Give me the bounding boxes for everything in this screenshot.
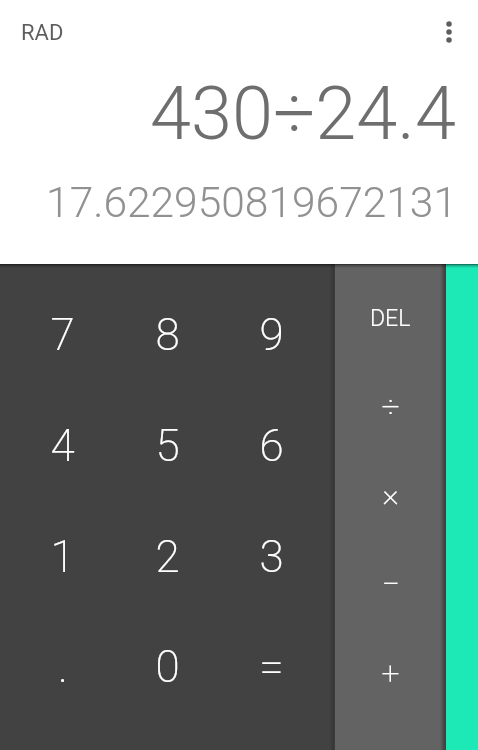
button[interactable]: . [10, 611, 115, 722]
button[interactable]: 6 [219, 389, 323, 500]
button[interactable]: Show advanced pad [446, 264, 478, 750]
button[interactable]: = [219, 611, 323, 722]
button[interactable]: × [335, 451, 446, 540]
button[interactable]: 0 [115, 611, 219, 722]
button[interactable]: − [335, 540, 446, 629]
button[interactable]: 3 [219, 500, 323, 611]
staticText: RAD [21, 20, 64, 46]
staticText: + [381, 654, 400, 692]
staticText: = [259, 641, 284, 693]
button[interactable]: 1 [10, 500, 115, 611]
staticText: . [58, 641, 68, 693]
staticText: 3 [259, 531, 284, 583]
staticText: 430÷24.4 [0, 70, 456, 157]
button[interactable]: DEL [335, 272, 446, 362]
staticText: 1 [50, 531, 75, 583]
button[interactable]: 9 [219, 279, 323, 389]
staticText: DEL [370, 305, 411, 332]
button[interactable]: 4 [10, 389, 115, 500]
staticText: 9 [259, 309, 284, 361]
button[interactable]: 7 [10, 279, 115, 389]
button[interactable]: 8 [115, 279, 219, 389]
button[interactable]: ÷ [335, 362, 446, 451]
staticText: 0 [155, 641, 180, 693]
staticText: × [382, 475, 399, 513]
button[interactable]: More options [429, 12, 469, 52]
staticText: 2 [155, 531, 180, 583]
staticText: 7 [50, 309, 75, 361]
staticText: 6 [259, 420, 284, 472]
staticText: 5 [155, 420, 180, 472]
staticText: 8 [155, 309, 180, 361]
staticText: − [381, 565, 400, 603]
staticText: 4 [50, 420, 75, 472]
staticText: 17.622950819672131 [0, 178, 457, 228]
button[interactable]: 2 [115, 500, 219, 611]
button[interactable]: RAD [5, 9, 80, 55]
button[interactable]: + [335, 629, 446, 718]
staticText: ÷ [381, 388, 400, 426]
button[interactable]: 5 [115, 389, 219, 500]
